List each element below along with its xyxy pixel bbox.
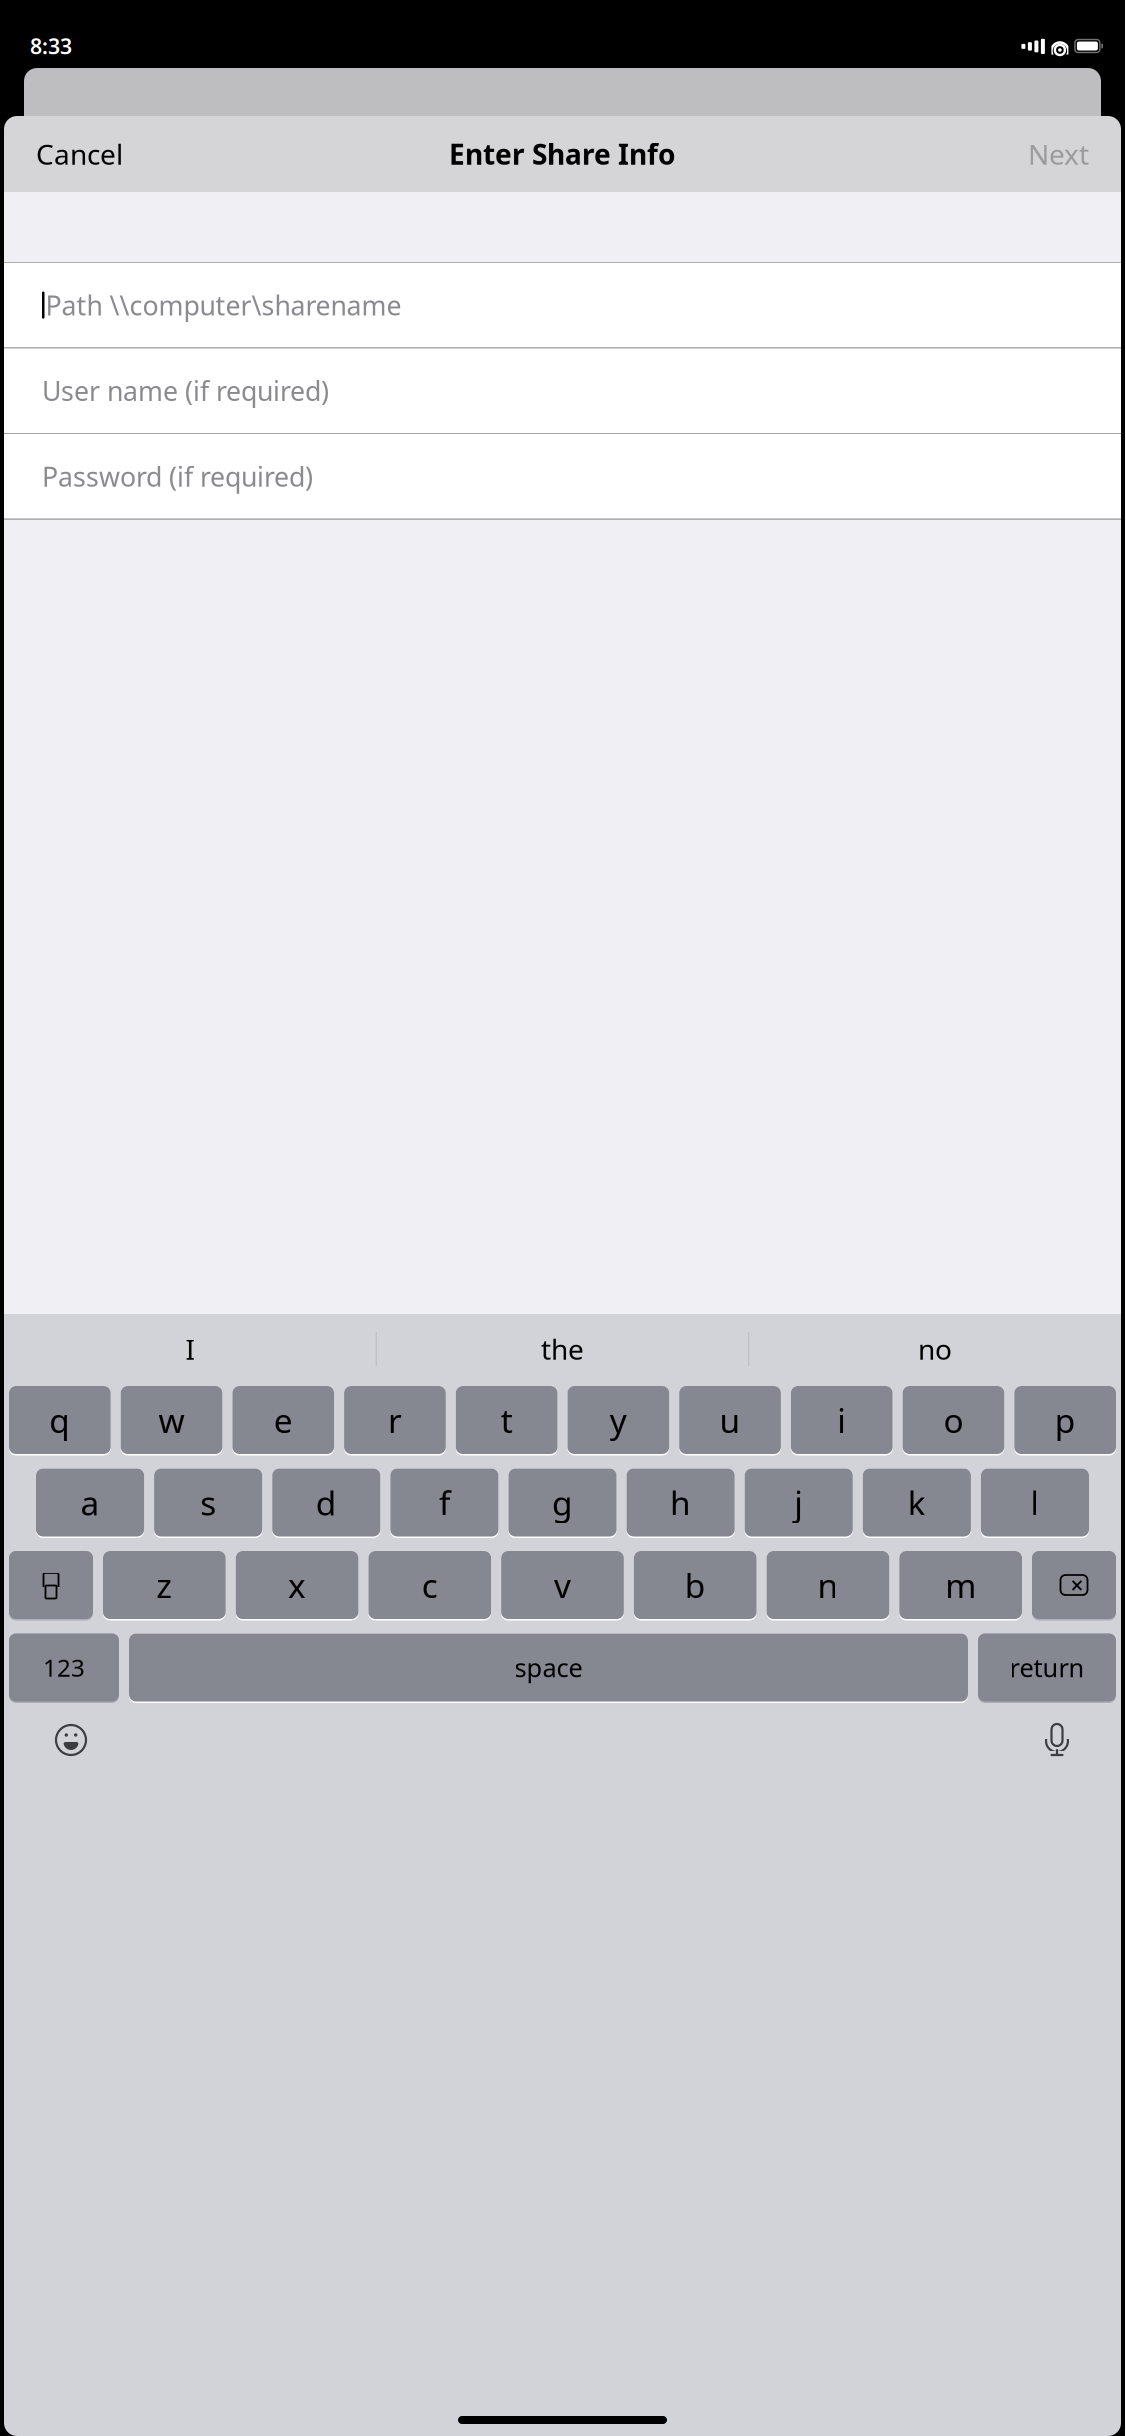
staticText: Cancel — [36, 135, 123, 173]
staticText: m — [945, 1563, 976, 1607]
button[interactable]: i — [791, 1386, 893, 1455]
staticText: b — [685, 1563, 706, 1607]
button[interactable]: a — [36, 1468, 144, 1538]
staticText: w — [159, 1398, 185, 1442]
button[interactable]: b — [634, 1551, 757, 1620]
staticText: s — [200, 1480, 216, 1525]
staticText: k — [908, 1480, 926, 1525]
button[interactable]: Cancel — [20, 125, 139, 183]
staticText: Next — [1028, 135, 1089, 173]
staticText: e — [274, 1398, 293, 1442]
button[interactable]: m — [899, 1551, 1022, 1620]
button[interactable]: return — [978, 1633, 1116, 1703]
staticText: i — [837, 1398, 846, 1442]
button[interactable]: h — [627, 1468, 735, 1538]
staticText: no — [918, 1330, 952, 1368]
staticText: n — [817, 1563, 838, 1607]
button[interactable]: v — [501, 1551, 624, 1620]
button[interactable]: p — [1014, 1386, 1116, 1455]
staticText: return — [1009, 1651, 1084, 1684]
staticText: Path \\computer\sharename — [45, 287, 401, 323]
staticText: Enter Share Info — [449, 135, 676, 173]
button[interactable]: Password (if required) — [4, 434, 1121, 519]
button[interactable]: Next — [1012, 125, 1105, 183]
button[interactable]: 123 — [9, 1633, 119, 1703]
button[interactable]: y — [567, 1386, 669, 1455]
button[interactable]: k — [863, 1468, 971, 1538]
button[interactable]: c — [368, 1551, 491, 1620]
button[interactable]: g — [508, 1468, 616, 1538]
button[interactable]: Dictation — [1043, 1722, 1071, 1758]
staticText: h — [670, 1480, 691, 1525]
button[interactable]: s — [154, 1468, 262, 1538]
staticText: User name (if required) — [42, 373, 329, 408]
button[interactable]: Path \\computer\sharename — [4, 263, 1121, 348]
staticText: × — [1070, 1570, 1083, 1600]
staticText: 8:33 — [30, 32, 72, 60]
staticText: g — [552, 1480, 573, 1525]
button[interactable]: n — [767, 1551, 889, 1620]
button[interactable]: Emoji keyboard — [54, 1723, 88, 1757]
staticText: 123 — [43, 1652, 85, 1683]
button[interactable]: j — [745, 1468, 853, 1538]
staticText: space — [514, 1651, 582, 1684]
staticText: j — [794, 1480, 803, 1525]
staticText: r — [388, 1398, 402, 1442]
button[interactable]: I — [4, 1321, 376, 1377]
staticText: I — [185, 1330, 194, 1368]
button[interactable]: u — [679, 1386, 781, 1455]
staticText: y — [610, 1398, 627, 1442]
button[interactable]: x — [236, 1551, 358, 1620]
button[interactable]: the — [377, 1321, 748, 1377]
button[interactable]: r — [344, 1386, 446, 1455]
button[interactable]: w — [121, 1386, 222, 1455]
button[interactable]: e — [232, 1386, 334, 1455]
button[interactable]: f — [390, 1468, 498, 1538]
button[interactable]: z — [103, 1551, 226, 1620]
staticText: x — [288, 1563, 306, 1607]
staticText: f — [439, 1480, 450, 1525]
button[interactable]: no — [749, 1321, 1121, 1377]
staticText: p — [1055, 1398, 1076, 1442]
button[interactable]: q — [9, 1386, 111, 1455]
staticText: u — [720, 1398, 741, 1442]
button[interactable]: Delete — [1032, 1551, 1116, 1620]
button[interactable]: l — [981, 1468, 1089, 1538]
staticText: Password (if required) — [42, 459, 313, 494]
staticText: t — [501, 1398, 513, 1442]
staticText: a — [81, 1480, 100, 1525]
staticText: c — [422, 1563, 438, 1607]
staticText: q — [49, 1398, 70, 1442]
button[interactable]: User name (if required) — [4, 348, 1121, 433]
staticText: the — [541, 1330, 584, 1368]
button[interactable]: space — [129, 1633, 968, 1703]
button[interactable]: Shift — [9, 1551, 93, 1620]
staticText: z — [156, 1563, 172, 1607]
staticText: l — [1030, 1480, 1039, 1525]
staticText: v — [554, 1563, 571, 1607]
staticText: d — [316, 1480, 337, 1525]
button[interactable]: o — [903, 1386, 1004, 1455]
staticText: o — [943, 1398, 963, 1442]
button[interactable]: d — [272, 1468, 380, 1538]
button[interactable]: t — [456, 1386, 557, 1455]
